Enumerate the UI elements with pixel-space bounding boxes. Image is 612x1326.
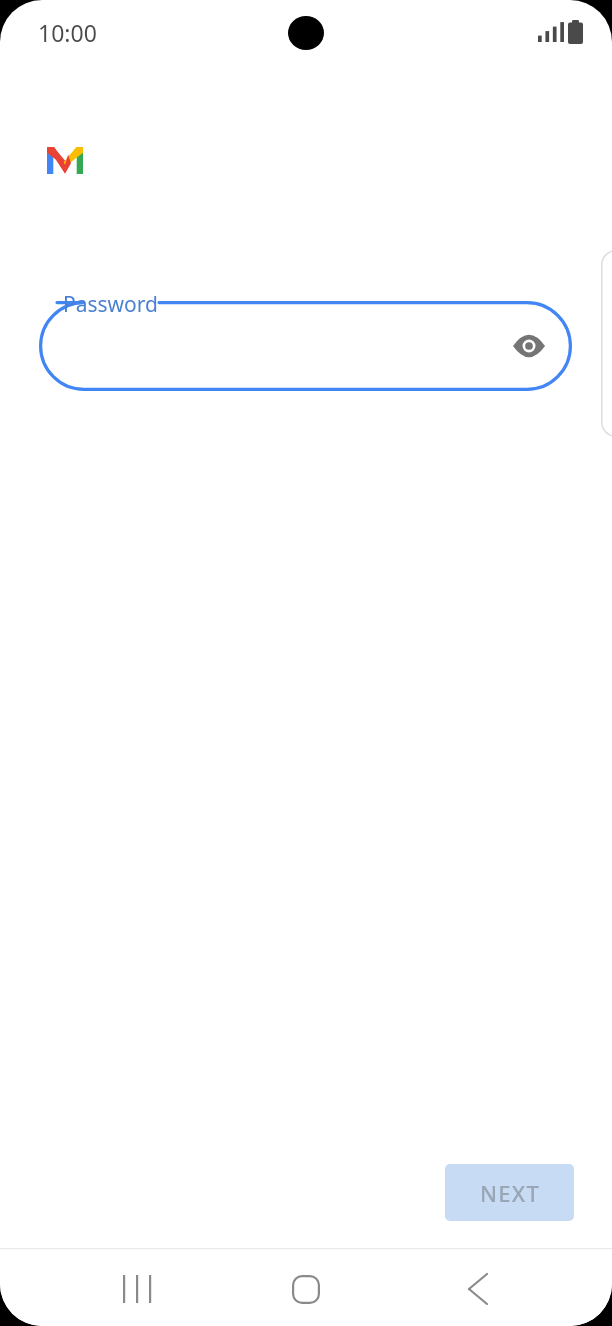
button[interactable]: Password — [39, 301, 572, 391]
button[interactable]: Show password — [507, 324, 551, 368]
button[interactable]: NEXT — [445, 1164, 574, 1221]
button[interactable]: Back — [448, 1259, 508, 1319]
staticText: NEXT — [480, 1178, 540, 1208]
staticText: Password — [63, 290, 158, 319]
button[interactable]: Recent apps — [106, 1259, 166, 1319]
button[interactable]: Home — [276, 1259, 336, 1319]
staticText: 10:00 — [38, 17, 97, 48]
